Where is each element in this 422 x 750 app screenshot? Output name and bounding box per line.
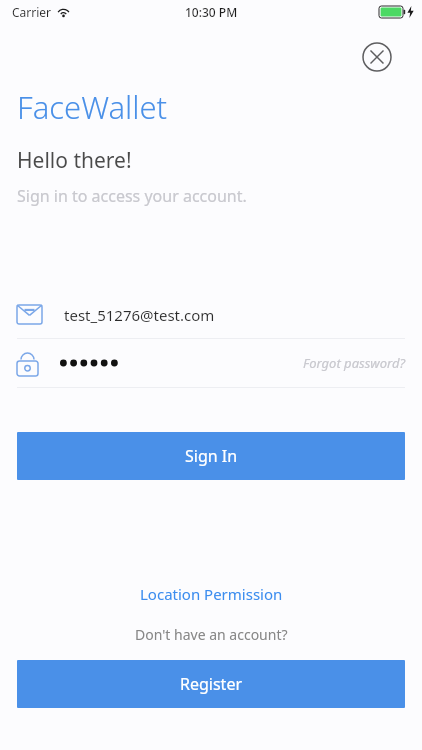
button[interactable]: test_51276@test.com bbox=[0, 291, 422, 338]
button[interactable]: Forgot password? bbox=[0, 339, 422, 387]
button[interactable]: Register bbox=[17, 660, 405, 708]
button[interactable]: Location Permission bbox=[132, 580, 291, 608]
staticText: Hello there! bbox=[17, 146, 132, 175]
button[interactable]: Forgot password? bbox=[303, 354, 405, 372]
staticText: Carrier bbox=[12, 4, 52, 20]
staticText: 10:30 PM bbox=[185, 4, 238, 20]
staticText: FaceWallet bbox=[17, 86, 168, 128]
button[interactable]: Close bbox=[358, 38, 396, 76]
staticText: Don't have an account? bbox=[135, 625, 288, 644]
staticText: Register bbox=[180, 673, 243, 695]
button[interactable]: Sign In bbox=[17, 432, 405, 480]
staticText: test_51276@test.com bbox=[64, 305, 215, 325]
staticText: Sign in to access your account. bbox=[17, 185, 247, 207]
staticText: Sign In bbox=[185, 445, 238, 467]
